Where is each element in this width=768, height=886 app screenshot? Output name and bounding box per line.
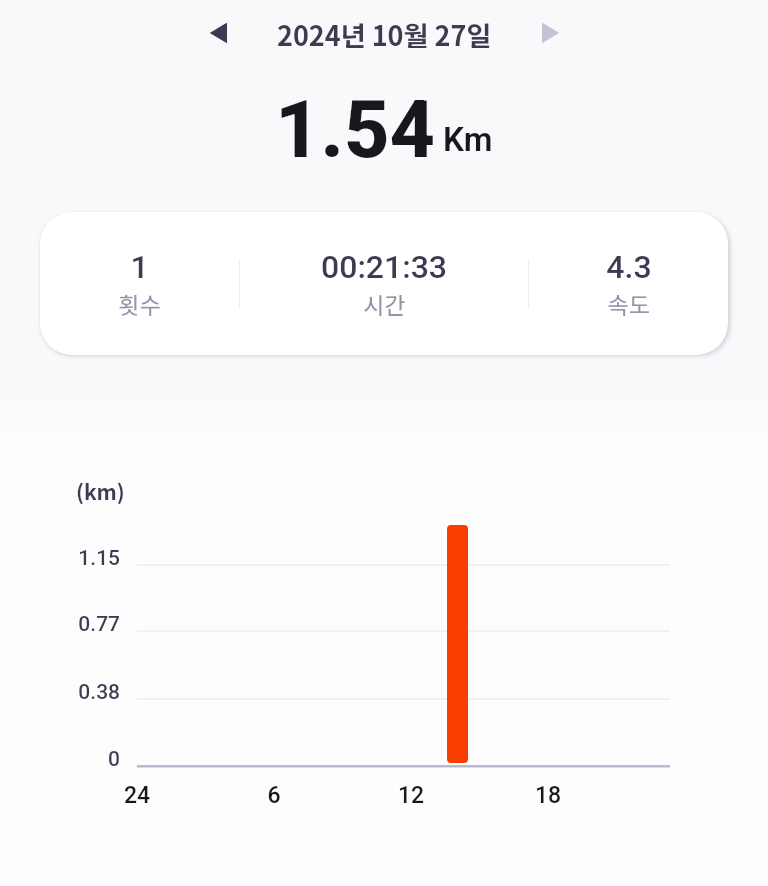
staticText: 2024년 10월 27일 xyxy=(277,15,492,54)
staticText: (km) xyxy=(76,476,125,506)
staticText: 0 xyxy=(0,747,120,772)
staticText: 시간 xyxy=(363,287,406,320)
staticText: 24 xyxy=(97,782,177,809)
staticText: 0.77 xyxy=(0,612,120,637)
staticText: Km xyxy=(443,120,493,159)
staticText: 횟수 xyxy=(118,287,161,320)
staticText: 4.3 xyxy=(606,248,652,286)
staticText: 18 xyxy=(508,782,588,809)
staticText: 1.15 xyxy=(0,546,120,571)
staticText: 1 xyxy=(130,248,149,286)
staticText: 1.54 xyxy=(275,84,436,177)
staticText: 0.38 xyxy=(0,680,120,705)
button[interactable]: Next day xyxy=(527,11,571,55)
staticText: 6 xyxy=(234,782,314,809)
staticText: 12 xyxy=(371,782,451,809)
staticText: 속도 xyxy=(607,287,650,320)
staticText: 00:21:33 xyxy=(321,248,447,286)
button[interactable]: Previous day xyxy=(197,11,241,55)
